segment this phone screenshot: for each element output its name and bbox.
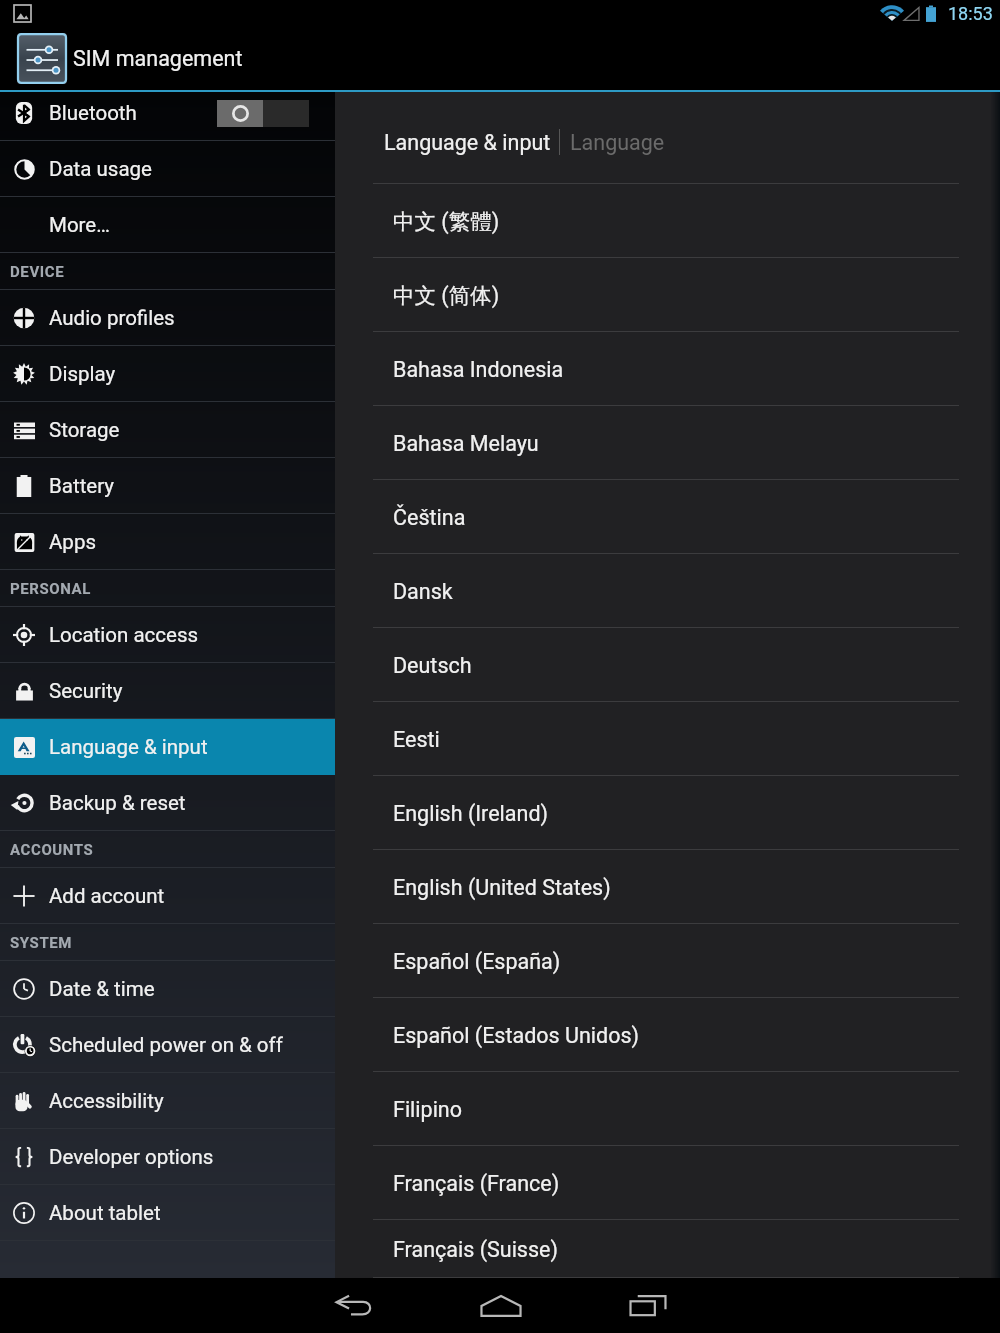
button[interactable]: Filipino: [335, 1072, 1000, 1146]
button[interactable]: Čeština: [335, 480, 1000, 554]
staticText: Accessibility: [49, 1089, 164, 1113]
staticText: DEVICE: [10, 263, 65, 281]
button[interactable]: Eesti: [335, 702, 1000, 776]
staticText: Apps: [49, 530, 96, 554]
button[interactable]: Security: [0, 663, 335, 719]
button[interactable]: Date & time: [0, 961, 335, 1017]
staticText: About tablet: [49, 1201, 161, 1225]
staticText: Scheduled power on & off: [49, 1033, 283, 1057]
staticText: Backup & reset: [49, 791, 186, 815]
button[interactable]: Bluetooth: [0, 92, 335, 141]
button[interactable]: English (United States): [335, 850, 1000, 924]
staticText: SIM management: [73, 46, 243, 71]
button[interactable]: Bahasa Indonesia: [335, 332, 1000, 406]
staticText: Bahasa Melayu: [393, 431, 539, 456]
staticText: English (Ireland): [393, 801, 548, 826]
button[interactable]: [217, 100, 309, 127]
staticText: Date & time: [49, 977, 155, 1001]
staticText: Add account: [49, 884, 165, 908]
staticText: Bluetooth: [49, 101, 137, 125]
button[interactable]: Français (Suisse): [335, 1220, 1000, 1278]
staticText: Data usage: [49, 157, 152, 181]
staticText: Security: [49, 679, 123, 703]
button[interactable]: Dansk: [335, 554, 1000, 628]
staticText: Battery: [49, 474, 115, 498]
button[interactable]: Español (España): [335, 924, 1000, 998]
staticText: ACCOUNTS: [10, 841, 94, 859]
button[interactable]: Language & input: [0, 719, 335, 775]
button[interactable]: Add account: [0, 868, 335, 924]
staticText: Filipino: [393, 1097, 463, 1122]
button[interactable]: Backup & reset: [0, 775, 335, 831]
button[interactable]: 中文 (繁體): [335, 184, 1000, 258]
staticText: Storage: [49, 418, 120, 442]
staticText: 中文 (繁體): [393, 208, 500, 235]
staticText: PERSONAL: [10, 580, 92, 598]
button[interactable]: English (Ireland): [335, 776, 1000, 850]
staticText: Audio profiles: [49, 306, 175, 330]
button[interactable]: Recent apps: [574, 1278, 721, 1333]
staticText: More…: [49, 213, 110, 237]
button[interactable]: 中文 (简体): [335, 258, 1000, 332]
button[interactable]: Scheduled power on & off: [0, 1017, 335, 1073]
staticText: Location access: [49, 623, 199, 647]
staticText: Language: [570, 130, 665, 155]
staticText: Eesti: [393, 727, 440, 752]
button[interactable]: Location access: [0, 607, 335, 663]
button[interactable]: Accessibility: [0, 1073, 335, 1129]
staticText: 18:53: [948, 3, 993, 24]
button[interactable]: About tablet: [0, 1185, 335, 1241]
button[interactable]: Battery: [0, 458, 335, 514]
button[interactable]: Audio profiles: [0, 290, 335, 346]
button[interactable]: Back: [280, 1278, 427, 1333]
staticText: Français (Suisse): [393, 1237, 558, 1262]
button[interactable]: More…: [0, 197, 335, 253]
button[interactable]: Bahasa Melayu: [335, 406, 1000, 480]
button[interactable]: Français (France): [335, 1146, 1000, 1220]
button[interactable]: Deutsch: [335, 628, 1000, 702]
button[interactable]: Storage: [0, 402, 335, 458]
button[interactable]: Display: [0, 346, 335, 402]
button[interactable]: Home: [427, 1278, 574, 1333]
staticText: 中文 (简体): [393, 282, 500, 309]
staticText: Español (España): [393, 949, 561, 974]
staticText: Language & input: [49, 735, 208, 759]
staticText: Developer options: [49, 1145, 214, 1169]
staticText: Deutsch: [393, 653, 472, 678]
button[interactable]: Developer options: [0, 1129, 335, 1185]
button[interactable]: Español (Estados Unidos): [335, 998, 1000, 1072]
staticText: Bahasa Indonesia: [393, 357, 564, 382]
staticText: English (United States): [393, 875, 611, 900]
staticText: Español (Estados Unidos): [393, 1023, 640, 1048]
button[interactable]: Data usage: [0, 141, 335, 197]
staticText: Dansk: [393, 579, 453, 604]
button[interactable]: Apps: [0, 514, 335, 570]
staticText: Français (France): [393, 1171, 560, 1196]
staticText: Čeština: [393, 505, 466, 530]
staticText: Display: [49, 362, 116, 386]
staticText: Language & input: [384, 130, 551, 155]
staticText: SYSTEM: [10, 934, 73, 952]
